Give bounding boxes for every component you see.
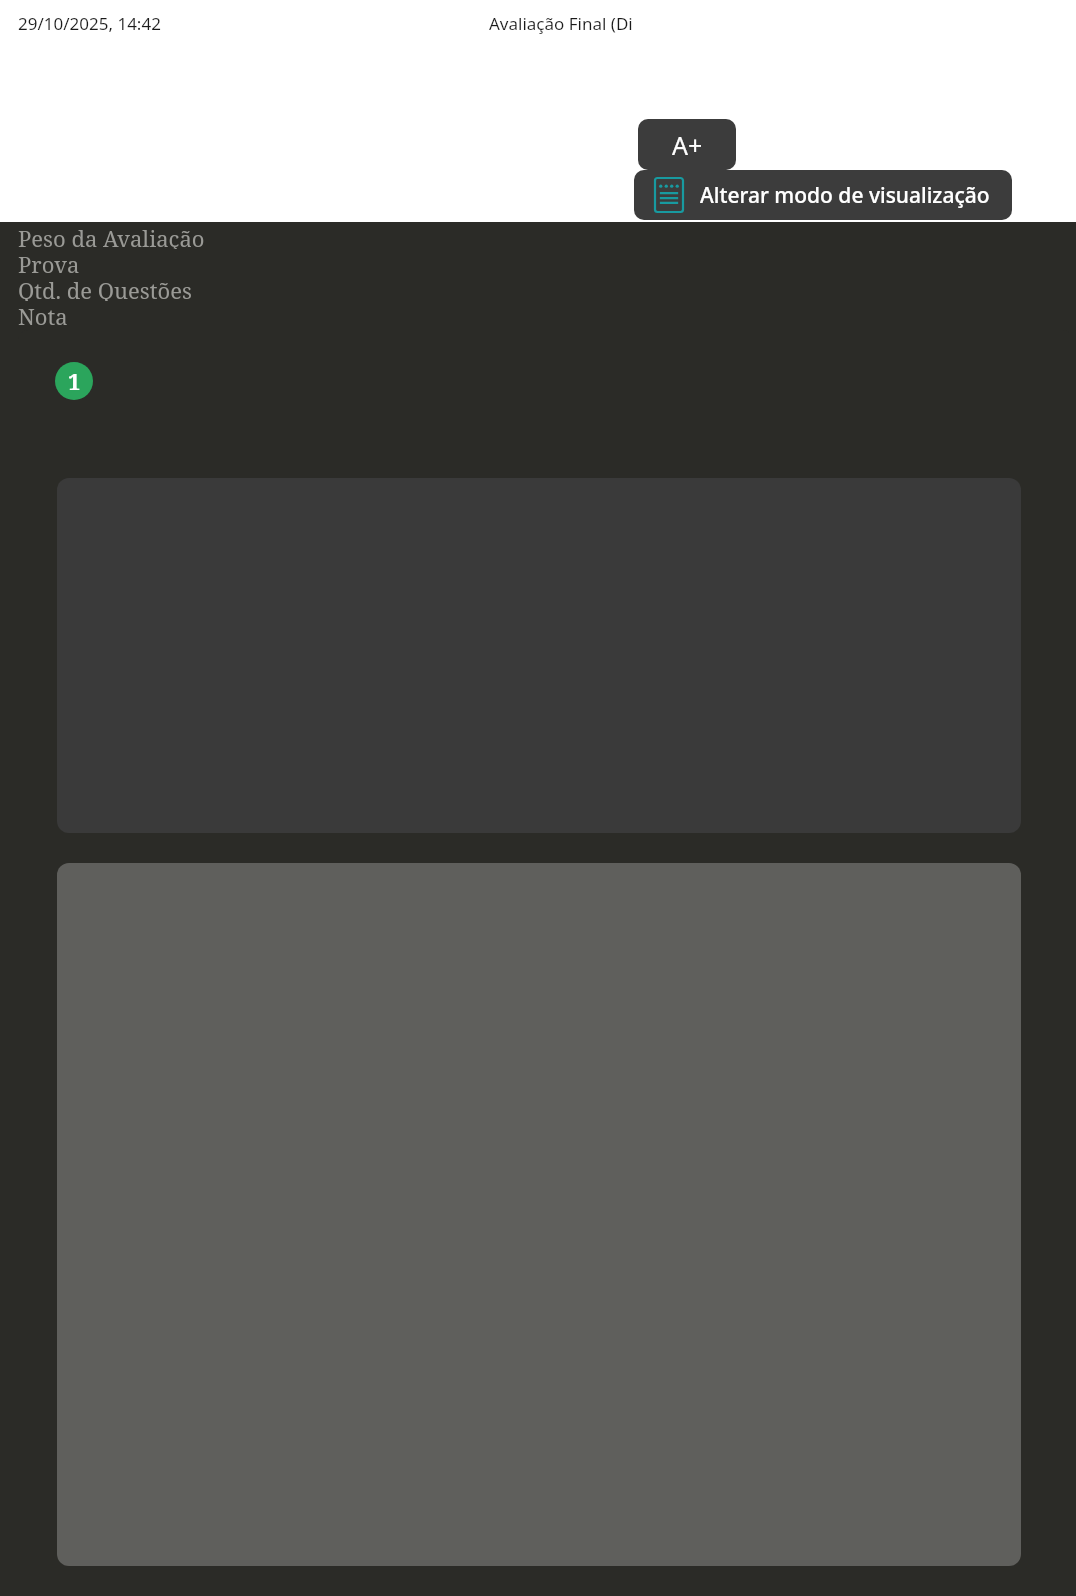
button[interactable]: Alterar modo de visualização (634, 170, 1012, 220)
staticText: 1 (68, 366, 81, 396)
staticText: Qtd. de Questões (18, 275, 192, 301)
staticText: Alterar modo de visualização (700, 181, 990, 210)
staticText: Avaliação Final (Di (489, 12, 633, 35)
staticText: Nota (18, 301, 68, 327)
staticText: Peso da Avaliação (18, 223, 205, 249)
staticText: Prova (18, 249, 80, 275)
staticText: 29/10/2025, 14:42 (18, 12, 161, 35)
button[interactable]: Aumentar fonte (638, 119, 736, 170)
button[interactable]: 1 (18, 330, 1073, 1596)
staticText: A+ (672, 128, 703, 162)
